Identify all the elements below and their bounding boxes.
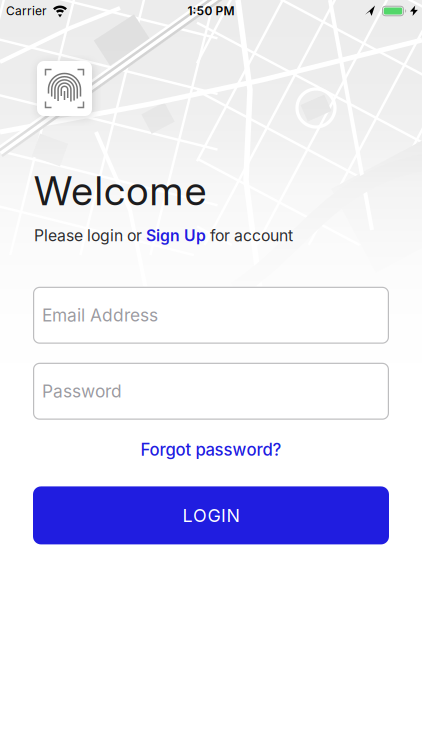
- staticText: Welcome: [34, 167, 207, 214]
- button[interactable]: Forgot password?: [140, 440, 281, 459]
- button[interactable]: Sign Up: [146, 226, 206, 245]
- staticText: Carrier: [6, 4, 47, 18]
- staticText: Password: [42, 381, 122, 401]
- staticText: 1:50 PM: [187, 4, 234, 18]
- button[interactable]: LOGIN: [33, 486, 389, 544]
- button[interactable]: Email Address: [33, 287, 389, 344]
- staticText: Sign Up: [146, 226, 206, 245]
- staticText: Forgot password?: [140, 440, 281, 459]
- staticText: Email Address: [42, 305, 158, 325]
- button[interactable]: Login with Touch ID: [37, 61, 92, 116]
- staticText: for account: [206, 226, 293, 245]
- button[interactable]: Password: [33, 363, 389, 420]
- staticText: Please login or: [34, 226, 146, 245]
- staticText: LOGIN: [182, 505, 239, 526]
